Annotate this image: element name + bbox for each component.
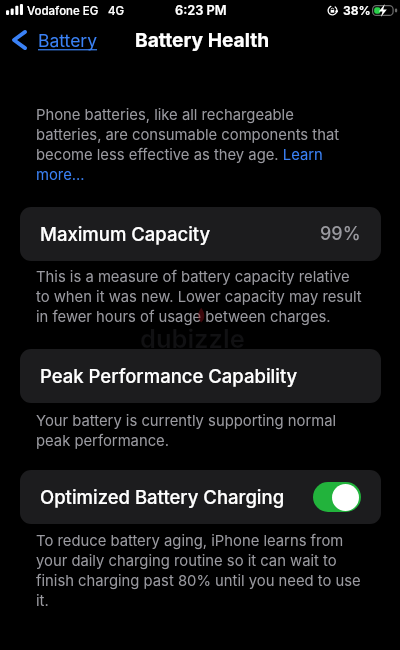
staticText: Phone batteries, like all rechargeable b…	[36, 106, 362, 184]
button[interactable]: Maximum Capacity	[20, 207, 381, 261]
staticText: This is a measure of battery capacity re…	[36, 268, 362, 326]
staticText: 99%	[320, 223, 361, 245]
staticText: Optimized Battery Charging	[40, 486, 285, 508]
staticText: Vodafone EG	[27, 4, 99, 18]
button[interactable]: Learn more	[36, 166, 88, 184]
staticText: 4G	[108, 4, 125, 18]
other: Rotation lock	[327, 5, 338, 16]
staticText: 38%	[343, 3, 371, 18]
staticText: Your battery is currently supporting nor…	[36, 412, 362, 450]
button[interactable]: Peak Performance Capability	[20, 349, 381, 403]
staticText: 6:23 PM	[175, 3, 227, 18]
staticText: Battery Health	[135, 28, 270, 51]
staticText: Peak Performance Capability	[40, 365, 298, 387]
button[interactable]: Toggle Optimized Battery Charging	[313, 482, 361, 512]
staticText: dubizzle	[140, 323, 245, 354]
button[interactable]: Battery	[6, 22, 104, 58]
staticText: Battery	[38, 30, 98, 51]
staticText: Maximum Capacity	[40, 223, 211, 245]
staticText: To reduce battery aging, iPhone learns f…	[36, 532, 362, 610]
button[interactable]: Optimized Battery Charging	[20, 470, 381, 524]
